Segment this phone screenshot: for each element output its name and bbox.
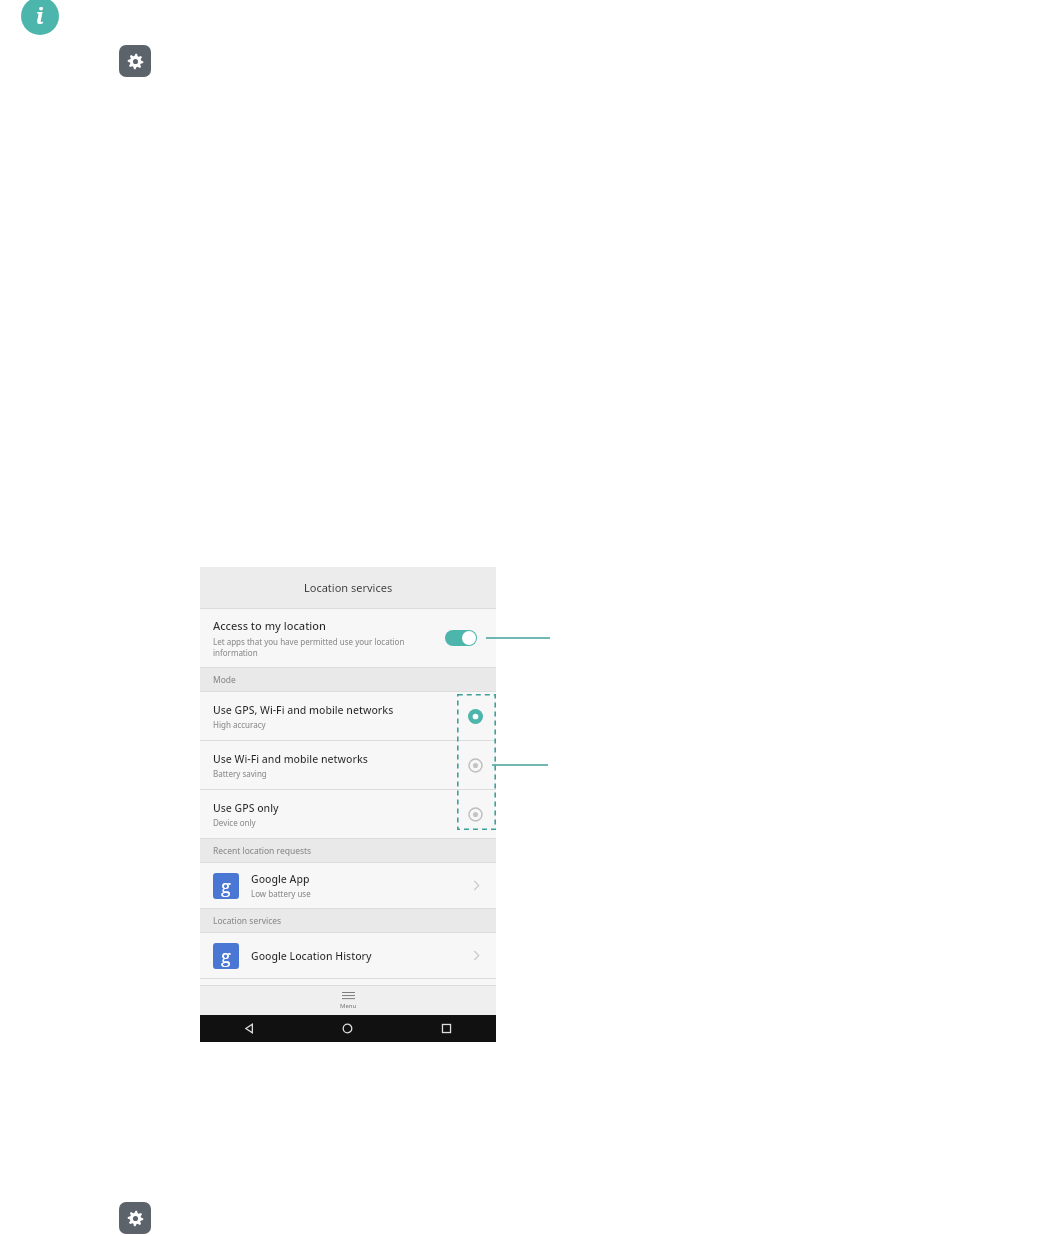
staticText: Low battery use bbox=[251, 888, 311, 899]
button[interactable]: Use GPS, Wi-Fi and mobile networks bbox=[200, 692, 496, 740]
button[interactable]: Use Wi-Fi and mobile networks bbox=[465, 755, 485, 775]
staticText: Recent location requests bbox=[213, 845, 312, 857]
button[interactable]: Back bbox=[200, 1015, 298, 1042]
staticText: g bbox=[221, 874, 231, 899]
staticText: Device only bbox=[213, 817, 256, 828]
staticText: Menu bbox=[340, 1002, 357, 1010]
staticText: g bbox=[221, 944, 231, 969]
button[interactable]: Access to my location bbox=[200, 609, 496, 667]
button[interactable]: Settings bbox=[119, 45, 151, 77]
staticText: Google Location History bbox=[251, 949, 372, 963]
staticText: i bbox=[36, 2, 44, 31]
button[interactable]: Use GPS, Wi-Fi and mobile networks bbox=[465, 706, 485, 726]
button[interactable]: Use GPS only bbox=[465, 804, 485, 824]
button[interactable]: Menu bbox=[200, 986, 496, 1015]
button[interactable]: g bbox=[200, 933, 496, 978]
button[interactable]: Information bbox=[21, 0, 59, 35]
staticText: Use GPS only bbox=[213, 801, 279, 815]
staticText: Battery saving bbox=[213, 768, 267, 779]
staticText: Use GPS, Wi-Fi and mobile networks bbox=[213, 703, 394, 717]
button[interactable]: Use Wi-Fi and mobile networks bbox=[200, 741, 496, 789]
button[interactable]: Use GPS only bbox=[200, 790, 496, 838]
button[interactable]: Home bbox=[298, 1015, 397, 1042]
button[interactable]: Access to my location toggle bbox=[445, 630, 477, 646]
button[interactable]: g bbox=[200, 863, 496, 908]
staticText: Location services bbox=[304, 580, 393, 595]
staticText: Let apps that you have permitted use you… bbox=[213, 636, 405, 658]
button[interactable]: Settings bbox=[119, 1202, 151, 1234]
staticText: Mode bbox=[213, 674, 236, 686]
staticText: Use Wi-Fi and mobile networks bbox=[213, 752, 368, 766]
staticText: Google App bbox=[251, 872, 310, 886]
staticText: High accuracy bbox=[213, 719, 266, 730]
button[interactable]: Recents bbox=[397, 1015, 496, 1042]
staticText: Access to my location bbox=[213, 618, 326, 633]
staticText: Location services bbox=[213, 915, 282, 927]
